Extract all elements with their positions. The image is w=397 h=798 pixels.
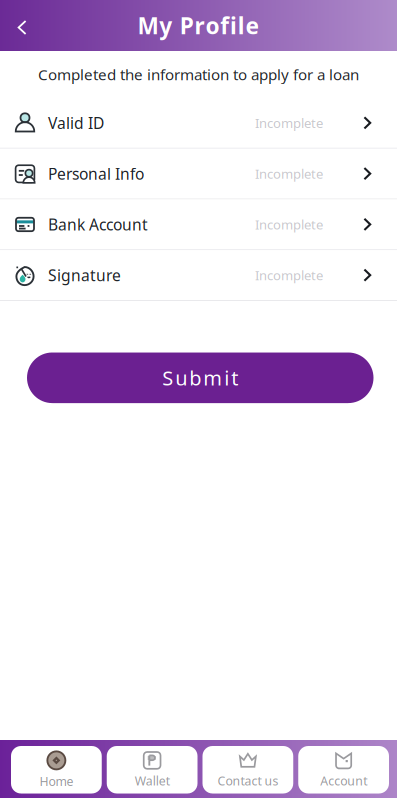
staticText: Bank Account [48,214,148,235]
button[interactable]: Valid ID [0,98,397,148]
button[interactable]: Account [298,746,389,793]
staticText: Signature [48,264,121,286]
staticText: Submit [162,364,238,391]
staticText: Valid ID [48,112,104,133]
staticText: Wallet [135,772,170,789]
button[interactable]: Contact us [202,746,293,793]
button[interactable]: Wallet [107,746,198,793]
staticText: Home [39,773,73,790]
button[interactable]: Back [0,3,44,47]
button[interactable]: Bank Account [0,199,397,249]
button[interactable]: Submit [27,352,373,403]
staticText: Account [320,772,367,789]
staticText: Incomplete [255,215,323,233]
staticText: Personal Info [48,163,144,184]
staticText: Incomplete [255,266,323,284]
staticText: My Profile [137,10,260,41]
staticText: Incomplete [255,165,323,182]
button[interactable]: Personal Info [0,149,397,199]
staticText: Completed the information to apply for a… [38,64,359,85]
button[interactable]: Home [11,746,102,793]
staticText: Incomplete [255,114,323,132]
staticText: Contact us [217,772,278,789]
button[interactable]: Signature [0,250,397,300]
